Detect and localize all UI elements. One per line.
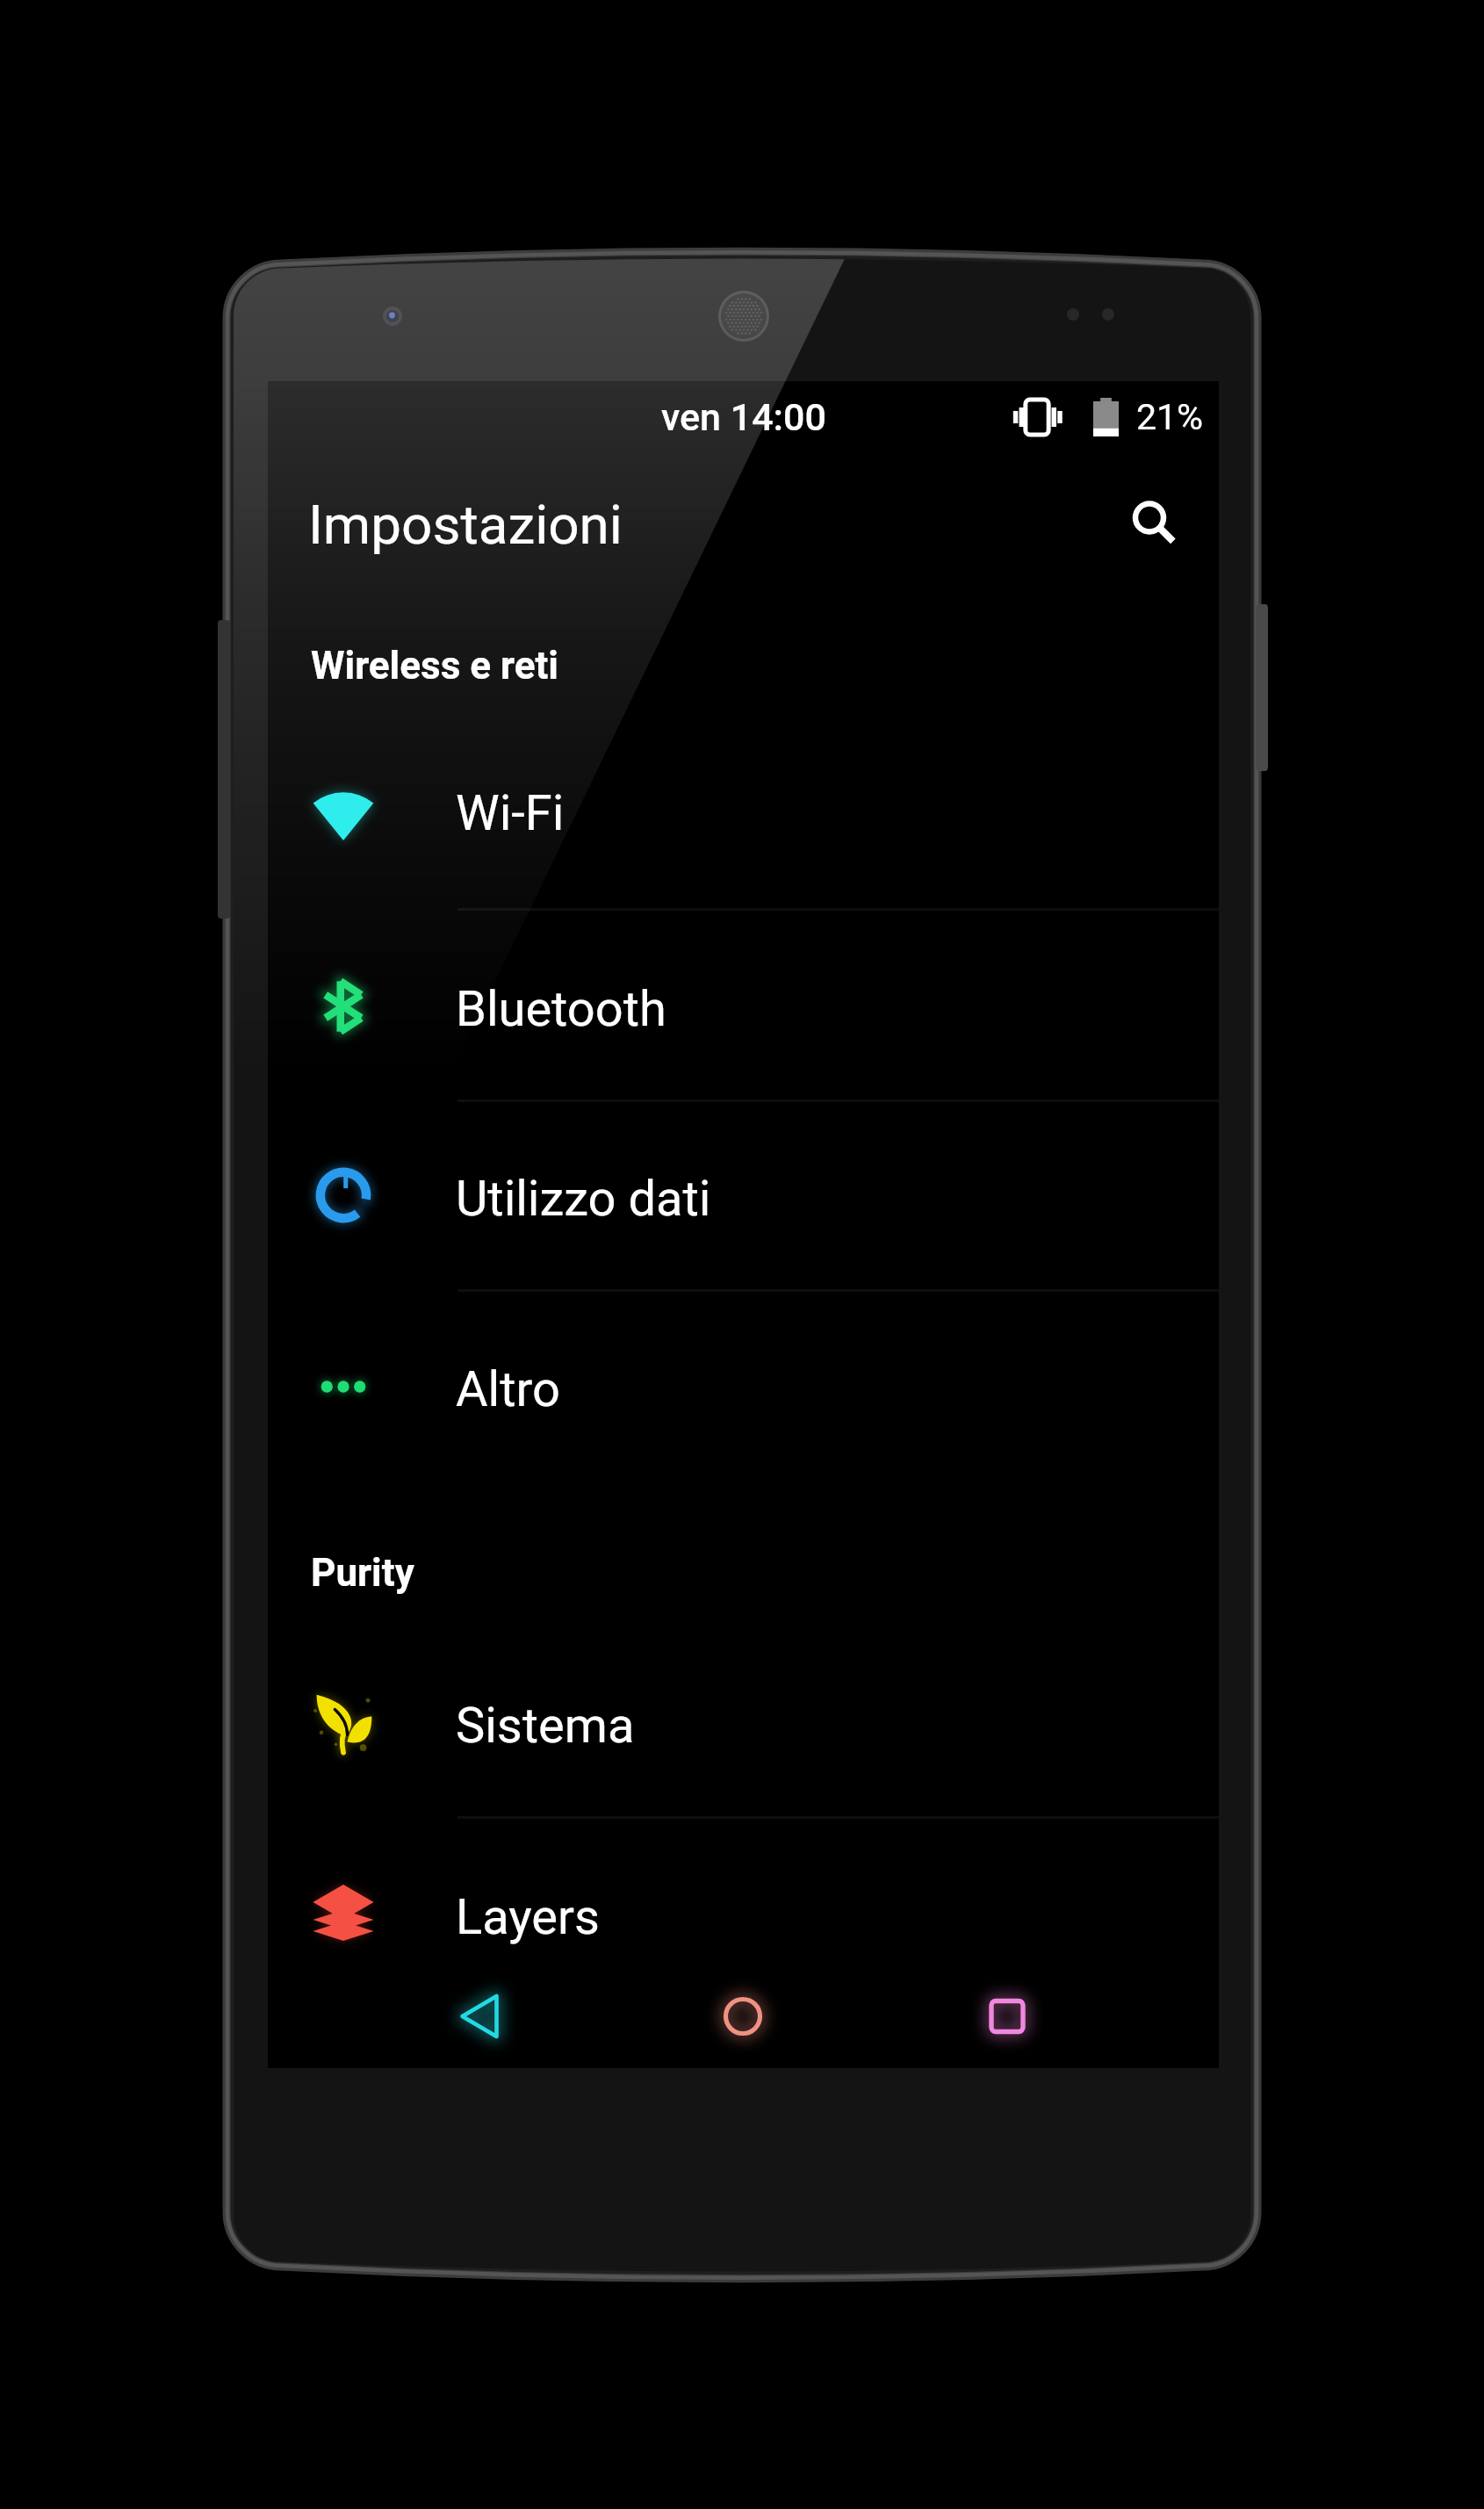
staticText: Altro [456, 1360, 560, 1418]
button[interactable]: Home [681, 1955, 804, 2078]
button[interactable]: Bluetooth [268, 915, 1219, 1103]
staticText: Layers [456, 1888, 600, 1946]
button[interactable]: Sistema [268, 1632, 1219, 1820]
staticText: Wireless e reti [311, 643, 559, 689]
button[interactable]: Search [1082, 470, 1178, 566]
button[interactable]: Layers [268, 1823, 1219, 2011]
staticText: Wi-Fi [456, 784, 565, 842]
button[interactable]: Recents [946, 1955, 1069, 2078]
staticText: Utilizzo dati [456, 1170, 711, 1228]
staticText: Bluetooth [456, 980, 666, 1038]
staticText: Impostazioni [308, 493, 623, 557]
button[interactable]: Altro [268, 1295, 1219, 1483]
button[interactable]: Back [418, 1955, 541, 2078]
button[interactable]: Utilizzo dati [268, 1105, 1219, 1293]
staticText: ven 14:00 [661, 395, 826, 439]
staticText: 21% [1136, 396, 1204, 438]
button[interactable]: Wi-Fi [268, 719, 1219, 907]
staticText: Sistema [456, 1697, 635, 1755]
staticText: Purity [311, 1550, 414, 1596]
